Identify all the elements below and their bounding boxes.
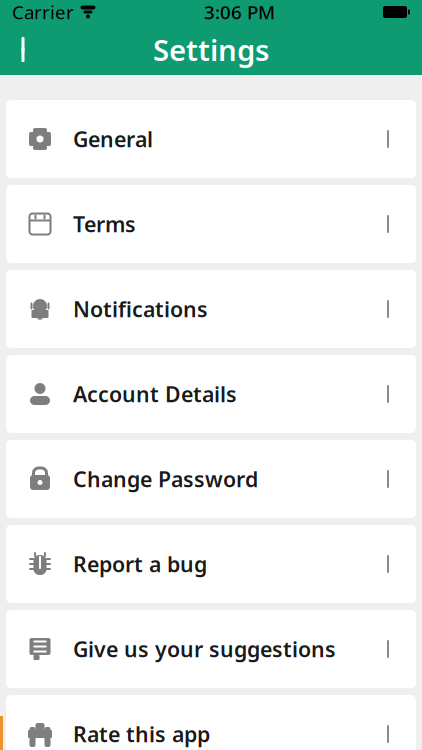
- staticText: 3:06 PM: [204, 0, 275, 24]
- button[interactable]: Report a bug: [6, 525, 416, 603]
- button[interactable]: General: [6, 100, 416, 178]
- button[interactable]: Give us your suggestions: [6, 610, 416, 688]
- staticText: Notifications: [73, 295, 208, 323]
- staticText: Account Details: [73, 380, 237, 408]
- staticText: General: [73, 125, 153, 153]
- staticText: Settings: [153, 30, 269, 69]
- staticText: Change Password: [73, 465, 258, 493]
- staticText: Report a bug: [73, 550, 207, 578]
- staticText: Carrier: [12, 0, 74, 24]
- button[interactable]: Terms: [6, 185, 416, 263]
- staticText: Give us your suggestions: [73, 635, 336, 663]
- button[interactable]: Back: [0, 24, 46, 75]
- button[interactable]: Account Details: [6, 355, 416, 433]
- staticText: Rate this app: [73, 720, 210, 748]
- button[interactable]: Notifications: [6, 270, 416, 348]
- staticText: Terms: [73, 210, 136, 238]
- button[interactable]: Rate this app: [6, 695, 416, 750]
- button[interactable]: Change Password: [6, 440, 416, 518]
